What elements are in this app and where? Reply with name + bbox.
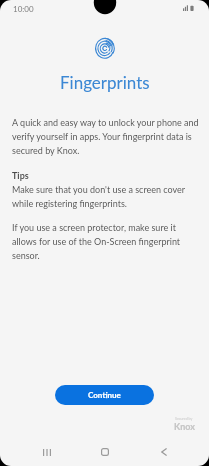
staticText: If you use a screen protector, make sure…: [12, 222, 200, 260]
staticText: Knox: [174, 421, 195, 432]
button[interactable]: Home: [91, 438, 119, 466]
staticText: Fingerprints: [60, 72, 150, 92]
staticText: A quick and easy way to unlock your phon…: [12, 117, 200, 155]
staticText: Make sure that you don't use a screen co…: [12, 184, 200, 208]
button[interactable]: Recent apps: [33, 438, 61, 466]
staticText: Tips: [12, 170, 29, 181]
staticText: Secured by: [175, 416, 193, 420]
button[interactable]: Continue: [55, 385, 154, 405]
staticText: Continue: [88, 390, 121, 400]
staticText: 10:00: [13, 4, 34, 14]
button[interactable]: Back: [150, 438, 178, 466]
